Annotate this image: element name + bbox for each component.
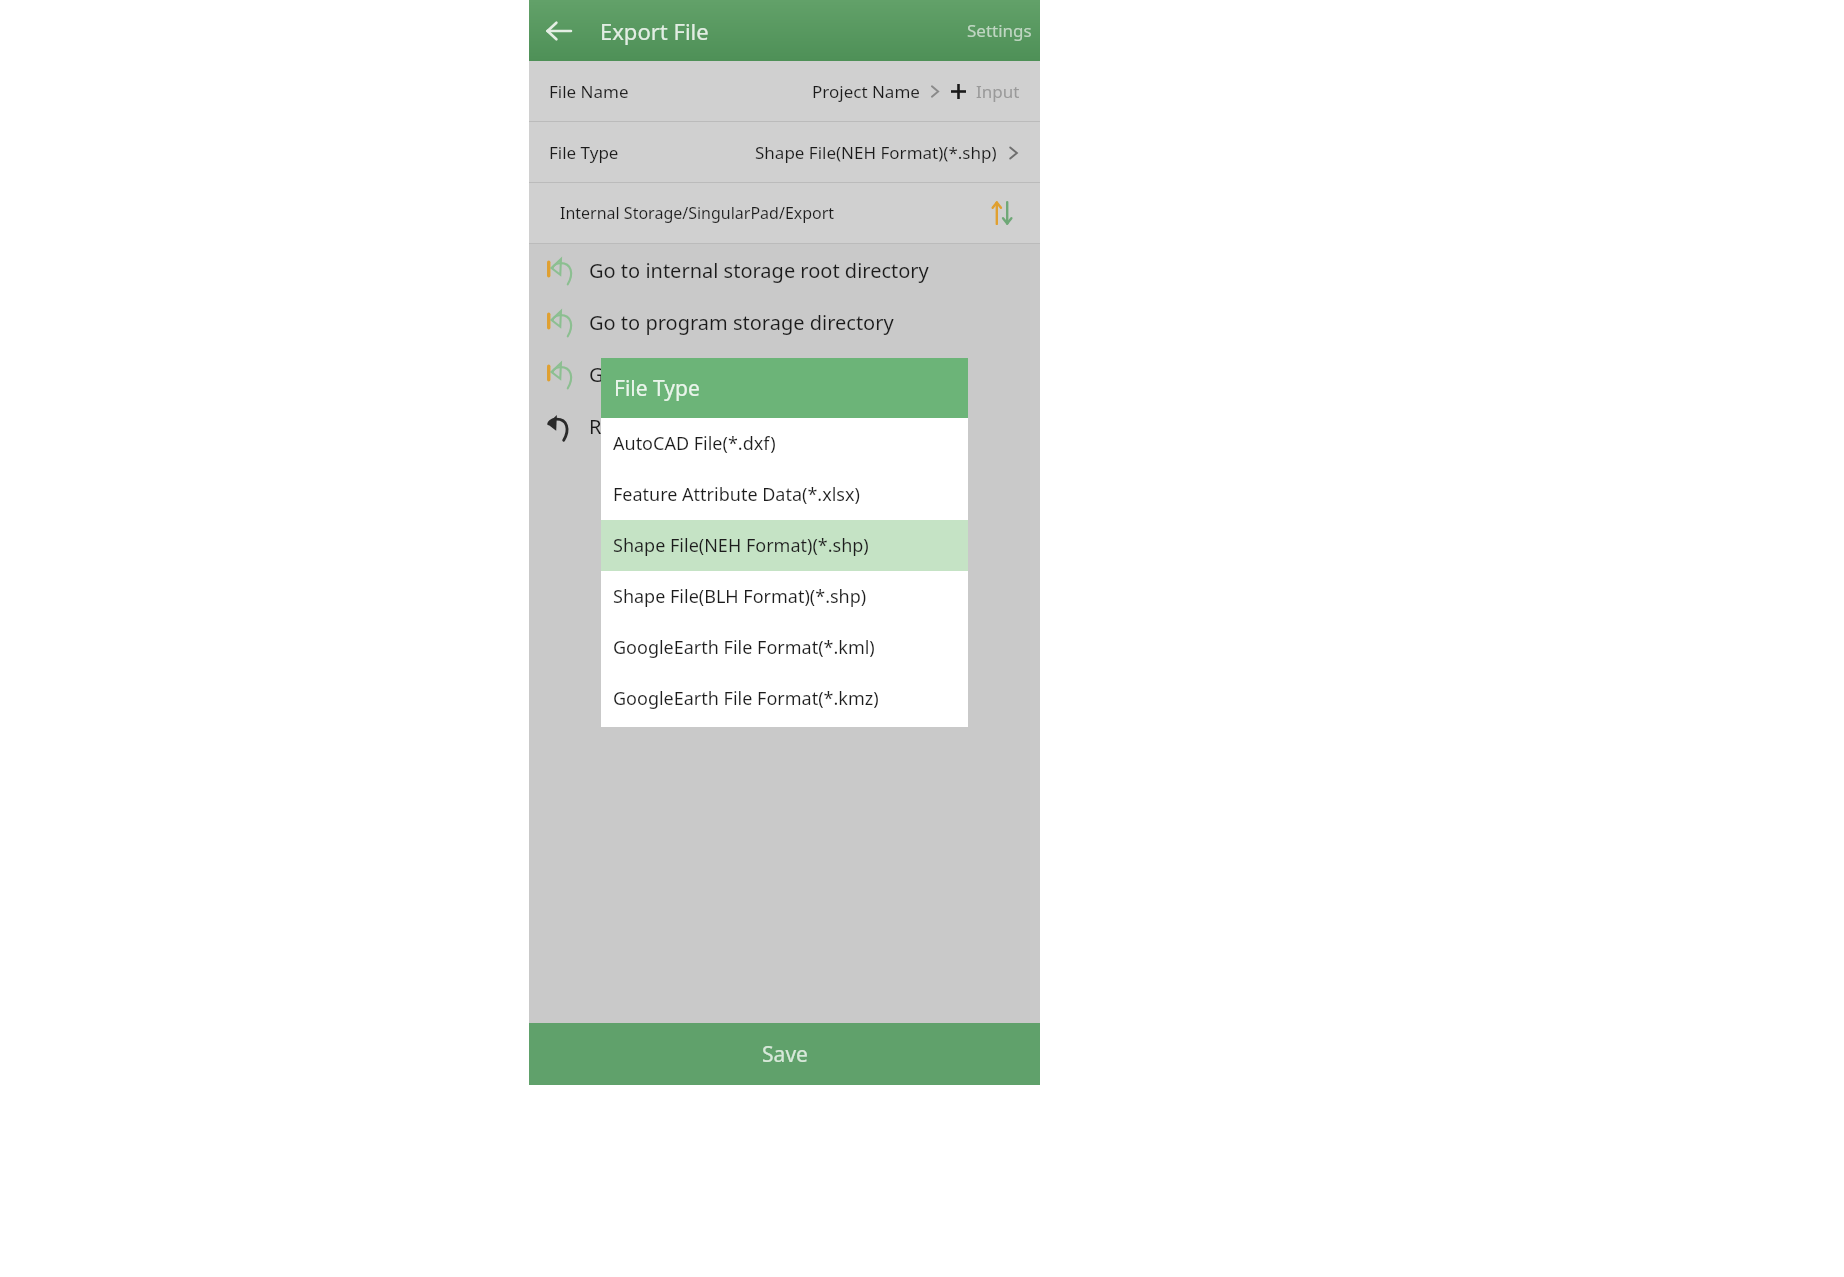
button[interactable]: AutoCAD File(*.dxf) — [601, 418, 968, 469]
staticText: GoogleEarth File Format(*.kml) — [613, 635, 875, 660]
staticText: File Name — [549, 80, 629, 103]
button[interactable]: Settings — [959, 9, 1040, 52]
button[interactable]: GoogleEarth File Format(*.kml) — [601, 622, 968, 673]
staticText: Internal Storage/SingularPad/Export — [560, 202, 835, 224]
staticText: File Type — [549, 141, 619, 164]
staticText: Go to SD card root directory — [589, 361, 851, 388]
button[interactable]: Sort — [984, 195, 1020, 231]
button[interactable]: File Name — [529, 61, 1040, 121]
button[interactable]: File Type — [529, 122, 1040, 182]
staticText: Go to program storage directory — [589, 309, 894, 336]
staticText: Project Name — [812, 80, 920, 103]
button[interactable]: Internal Storage/SingularPad/Export — [529, 183, 1040, 243]
button[interactable]: Return to previous directory — [529, 400, 1040, 452]
staticText: Input — [976, 80, 1020, 103]
staticText: Return to previous directory — [589, 413, 853, 440]
staticText: Shape File(BLH Format)(*.shp) — [613, 584, 867, 609]
button[interactable]: Go to internal storage root directory — [529, 244, 1040, 296]
staticText: Shape File(NEH Format)(*.shp) — [613, 533, 869, 558]
staticText: GoogleEarth File Format(*.kmz) — [613, 686, 879, 711]
button[interactable]: Feature Attribute Data(*.xlsx) — [601, 469, 968, 520]
button[interactable]: Go to program storage directory — [529, 296, 1040, 348]
staticText: Settings — [967, 19, 1032, 42]
button[interactable]: Shape File(NEH Format)(*.shp) — [601, 520, 968, 571]
button[interactable]: Back — [537, 9, 581, 53]
staticText: File Type — [614, 374, 700, 403]
staticText: AutoCAD File(*.dxf) — [613, 431, 776, 456]
staticText: Go to internal storage root directory — [589, 257, 929, 284]
staticText: Save — [762, 1040, 808, 1069]
staticText: Shape File(NEH Format)(*.shp) — [755, 141, 997, 164]
button[interactable]: Go to SD card root directory — [529, 348, 1040, 400]
button[interactable]: Save — [529, 1023, 1040, 1085]
staticText: Export File — [600, 16, 709, 46]
button[interactable]: GoogleEarth File Format(*.kmz) — [601, 673, 968, 724]
staticText: Feature Attribute Data(*.xlsx) — [613, 482, 860, 507]
button[interactable]: Shape File(BLH Format)(*.shp) — [601, 571, 968, 622]
